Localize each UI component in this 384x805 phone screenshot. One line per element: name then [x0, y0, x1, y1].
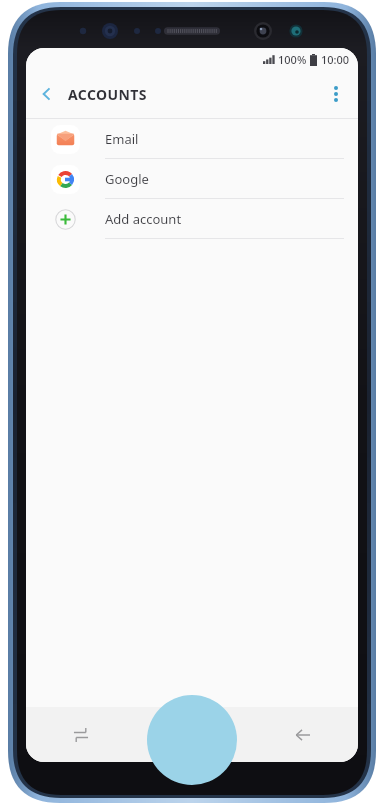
button[interactable]: Back [247, 707, 358, 762]
button[interactable]: Recent apps [26, 707, 136, 762]
staticText: Google [105, 170, 149, 188]
button[interactable]: Add account [26, 199, 358, 239]
button[interactable]: Google [26, 159, 358, 199]
staticText: 10:00 [321, 52, 350, 67]
button[interactable]: More options [314, 72, 358, 116]
staticText: Email [105, 130, 139, 148]
button[interactable]: Email [26, 119, 358, 159]
staticText: 100% [278, 52, 307, 67]
staticText: Add account [105, 210, 182, 228]
button[interactable]: Home [136, 707, 247, 762]
button[interactable]: Navigate up [26, 73, 68, 115]
staticText: ACCOUNTS [68, 85, 147, 104]
